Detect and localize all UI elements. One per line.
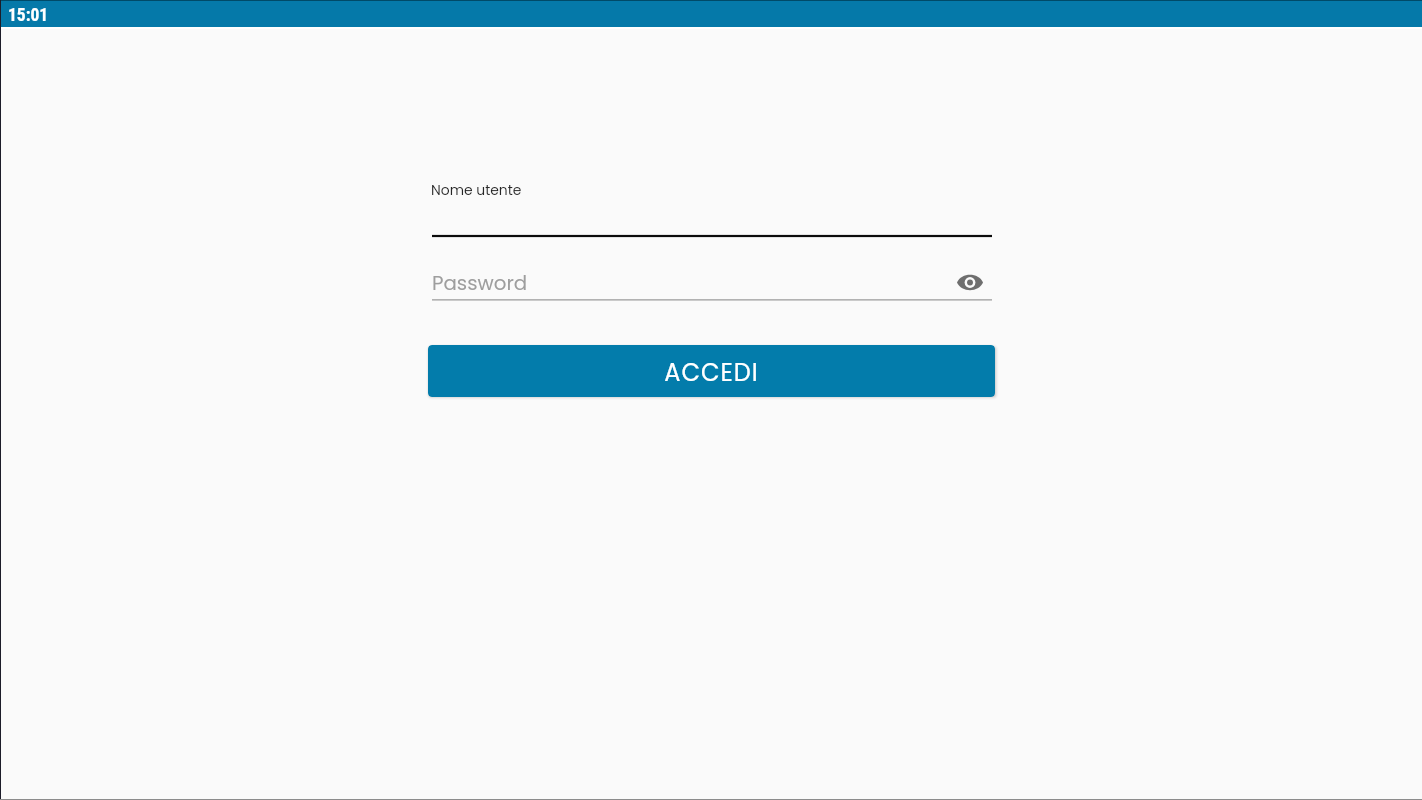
button[interactable]: Password [428,262,995,302]
button[interactable]: Nome utente [428,170,995,238]
staticText: Nome utente [431,180,522,199]
button[interactable]: Show password [948,267,991,297]
staticText: 15:01 [8,5,49,26]
button[interactable]: ACCEDI [428,345,995,397]
staticText: ACCEDI [664,356,759,390]
staticText: Password [432,269,528,297]
